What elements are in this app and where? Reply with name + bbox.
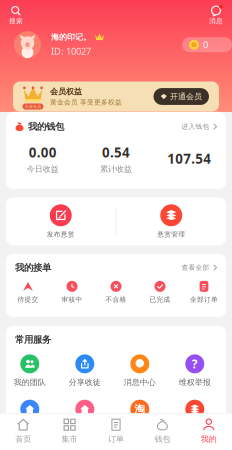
staticText: 查看全部 xyxy=(182,263,210,272)
button[interactable]: 待提交 xyxy=(6,280,50,304)
button[interactable]: 悬赏管理 xyxy=(116,204,226,238)
staticText: 消息中心 xyxy=(124,377,156,387)
staticText: 开通会员 xyxy=(170,92,202,101)
staticText: 待提交 xyxy=(17,295,38,304)
staticText: ? xyxy=(192,356,198,372)
staticText: 全部订单 xyxy=(190,295,218,304)
button[interactable]: 查看全部 xyxy=(182,263,217,272)
staticText: 订单 xyxy=(108,434,124,444)
button[interactable]: 实名认证 xyxy=(2,400,57,432)
button[interactable]: 发布悬赏 xyxy=(6,204,115,238)
button[interactable]: 分享收徒 xyxy=(57,354,112,387)
button[interactable]: 钱包 xyxy=(139,418,186,444)
staticText: 常用服务 xyxy=(15,334,51,345)
staticText: 审核中 xyxy=(61,295,82,304)
staticText: 不合格 xyxy=(105,295,126,304)
staticText: 首页 xyxy=(15,434,31,444)
staticText: 搜索 xyxy=(9,17,23,25)
staticText: 白金会员 xyxy=(25,104,41,109)
staticText: 会员权益 xyxy=(50,87,82,96)
button[interactable]: 金币 xyxy=(182,37,232,52)
button[interactable]: 海的印记。 xyxy=(0,31,104,58)
staticText: 分享收徒 xyxy=(69,377,101,387)
staticText: 悬赏管理 xyxy=(157,230,185,238)
staticText: 进入钱包 xyxy=(182,122,210,131)
button[interactable]: 首页 xyxy=(0,418,46,444)
staticText: 0 xyxy=(203,38,208,51)
button[interactable]: 已完成 xyxy=(138,280,182,304)
staticText: 海的印记。 xyxy=(51,32,91,42)
staticText: 黄金会员 享受更多权益 xyxy=(50,98,122,106)
staticText: 我的 xyxy=(201,434,217,444)
staticText: 我的收藏 xyxy=(69,423,101,432)
staticText: 我的团队 xyxy=(14,377,46,387)
button[interactable]: 进入钱包 xyxy=(182,122,217,131)
staticText: ID: 10027 xyxy=(51,45,91,57)
button[interactable]: 我的团队 xyxy=(2,354,57,387)
staticText: 钱包 xyxy=(154,434,170,444)
staticText: 累计收益 xyxy=(100,164,132,174)
button[interactable]: 淘 xyxy=(112,400,167,432)
button[interactable]: 订单 xyxy=(93,418,139,444)
button[interactable]: ? xyxy=(167,354,222,387)
button[interactable]: 集市 xyxy=(46,418,93,444)
staticText: 消息 xyxy=(209,17,223,25)
staticText: 我的接单 xyxy=(15,262,51,273)
button[interactable]: 消息中心 xyxy=(112,354,167,387)
staticText: 107.54 xyxy=(167,150,211,167)
button[interactable]: 审核中 xyxy=(50,280,94,304)
staticText: 集市 xyxy=(62,434,78,444)
staticText: 0.00 xyxy=(29,143,57,161)
button[interactable]: 消息 xyxy=(206,6,226,25)
staticText: 实名认证 xyxy=(14,423,46,432)
staticText: 已完成 xyxy=(149,295,170,304)
staticText: 0.54 xyxy=(102,143,130,161)
button[interactable]: 我的收藏 xyxy=(57,400,112,432)
staticText: 今日收益 xyxy=(27,164,59,174)
button[interactable]: 搜索 xyxy=(6,6,26,25)
button[interactable]: 新手教程 xyxy=(167,400,222,432)
button[interactable]: 不合格 xyxy=(94,280,138,304)
staticText: 维权举报 xyxy=(179,377,211,387)
button[interactable]: 我的 xyxy=(186,418,232,444)
button[interactable]: 白金会员 xyxy=(0,81,232,111)
button[interactable]: 全部订单 xyxy=(182,280,226,304)
staticText: 我的钱包 xyxy=(28,121,64,132)
staticText: 淘 xyxy=(134,403,145,416)
staticText: 发布悬赏 xyxy=(47,230,75,238)
staticText: 新手教程 xyxy=(179,423,211,432)
